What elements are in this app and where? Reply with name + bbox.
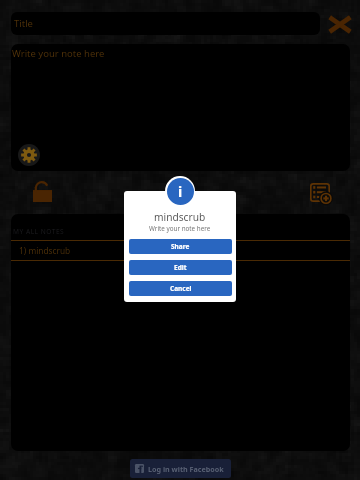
staticText: Title: [14, 17, 33, 30]
button[interactable]: Settings: [18, 144, 40, 166]
button[interactable]: Title: [11, 12, 320, 35]
button[interactable]: Write your note here: [11, 44, 350, 171]
button[interactable]: Close: [327, 11, 353, 37]
button[interactable]: Cancel: [129, 281, 232, 296]
staticText: Write your note here: [12, 47, 105, 60]
staticText: Share: [171, 242, 190, 251]
button[interactable]: New list: [308, 180, 333, 205]
staticText: 1) mindscrub: [19, 245, 71, 256]
staticText: i: [178, 182, 183, 201]
staticText: MY ALL NOTES: [13, 227, 65, 236]
staticText: Log in with Facebook: [148, 464, 224, 474]
staticText: Write your note here: [149, 224, 211, 233]
button[interactable]: Lock note: [31, 179, 55, 203]
button[interactable]: Edit: [129, 260, 232, 275]
staticText: Cancel: [170, 284, 192, 293]
button[interactable]: 1) mindscrub: [11, 241, 350, 260]
button[interactable]: Log in with Facebook: [130, 459, 231, 478]
staticText: Edit: [174, 263, 187, 272]
staticText: mindscrub: [154, 210, 206, 224]
button[interactable]: Share: [129, 239, 232, 254]
